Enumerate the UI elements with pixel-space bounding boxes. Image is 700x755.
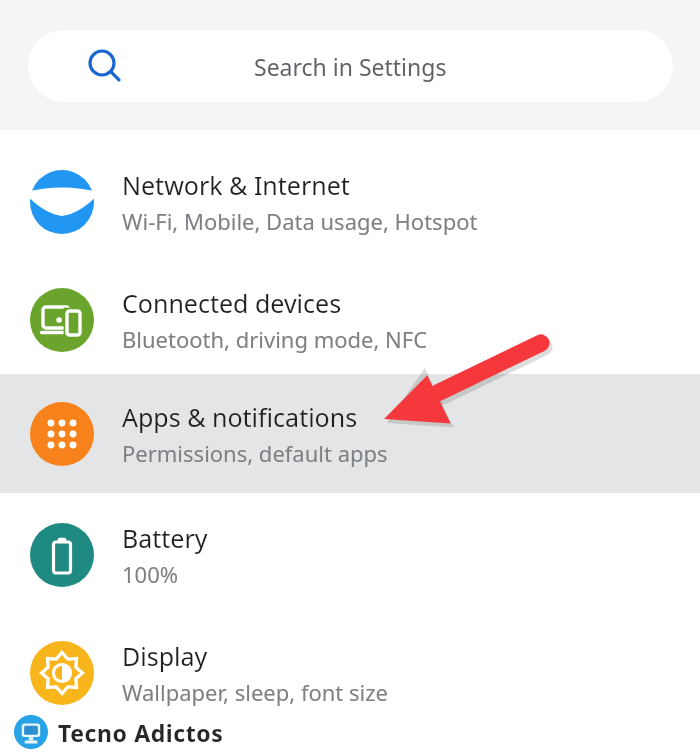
staticText: Tecno Adictos [58, 717, 224, 748]
staticText: Permissions, default apps [122, 438, 388, 468]
other: Battery [30, 523, 94, 587]
button[interactable]: Battery [0, 501, 700, 609]
button[interactable]: Network & Internet [0, 148, 700, 256]
staticText: Search in Settings [254, 51, 447, 82]
other: Apps & notifications [30, 402, 94, 466]
other: Connected devices [30, 288, 94, 352]
staticText: Network & Internet [122, 168, 350, 202]
staticText: Apps & notifications [122, 400, 358, 434]
staticText: Wi-Fi, Mobile, Data usage, Hotspot [122, 206, 478, 236]
staticText: Display [122, 639, 208, 673]
button[interactable]: Search in Settings [28, 30, 673, 102]
other: Display [30, 641, 94, 705]
staticText: Battery [122, 521, 208, 555]
staticText: Wallpaper, sleep, font size [122, 677, 388, 707]
other: Network & Internet [30, 170, 94, 234]
staticText: 100% [122, 559, 179, 589]
staticText: Connected devices [122, 286, 342, 320]
button[interactable]: Apps & notifications [0, 374, 700, 493]
button[interactable]: Display [0, 619, 700, 727]
staticText: Bluetooth, driving mode, NFC [122, 324, 428, 354]
button[interactable]: Connected devices [0, 266, 700, 374]
